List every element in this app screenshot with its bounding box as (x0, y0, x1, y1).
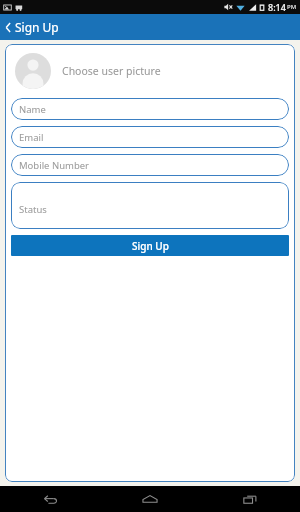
button[interactable]: Choose user picture (11, 51, 289, 91)
button[interactable]: Recent apps (200, 486, 300, 512)
other: Back (5, 22, 11, 33)
other: Recent apps (243, 494, 257, 505)
button[interactable]: Email (11, 126, 289, 148)
staticText: Choose user picture (62, 64, 161, 78)
staticText: Status (19, 203, 47, 216)
staticText: Sign Up (15, 19, 59, 35)
staticText: Email (19, 131, 44, 144)
other: Home (142, 494, 158, 504)
button[interactable]: Back (0, 486, 100, 512)
other: Back (43, 494, 58, 505)
button[interactable]: Sign Up (11, 235, 289, 256)
staticText: Mobile Number (19, 159, 90, 172)
button[interactable]: Status (11, 182, 289, 229)
staticText: Sign Up (132, 239, 169, 253)
staticText: 8:14 (268, 1, 286, 13)
staticText: Name (19, 103, 46, 116)
button[interactable]: Name (11, 98, 289, 120)
staticText: PM (287, 3, 297, 11)
button[interactable]: Back (0, 14, 69, 40)
button[interactable]: Mobile Number (11, 154, 289, 176)
button[interactable]: Home (100, 486, 200, 512)
other: Choose user picture (15, 53, 51, 89)
